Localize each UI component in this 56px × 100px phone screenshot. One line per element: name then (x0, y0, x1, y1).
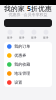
staticText: 服务 (43, 36, 49, 39)
staticText: 地址管理 (14, 71, 30, 76)
staticText: 我的订单 (14, 44, 30, 49)
button[interactable]: 设置 (4, 78, 52, 87)
staticText: 优惠券 (14, 53, 26, 58)
staticText: 优惠券 · 会员专享权益 (8, 12, 47, 17)
button[interactable]: 我的收藏 (4, 60, 52, 69)
button[interactable]: 地址管理 (4, 69, 52, 78)
staticText: 设置 (14, 80, 22, 85)
button[interactable]: 优惠券 (4, 51, 52, 60)
staticText: 我的收藏 (14, 62, 30, 67)
staticText: 服务 (7, 36, 13, 39)
staticText: 我的家 5折优惠 (4, 4, 52, 13)
staticText: 服务 (19, 36, 25, 39)
button[interactable]: 我的订单 (4, 42, 52, 51)
staticText: 服务 (31, 36, 37, 39)
